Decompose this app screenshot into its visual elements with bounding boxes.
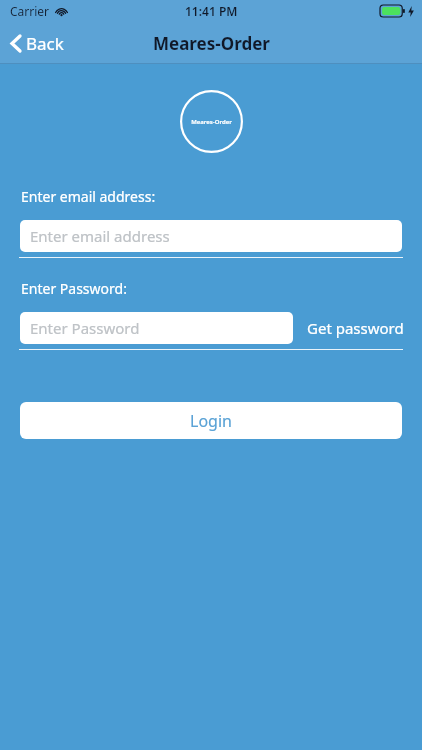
staticText: Login [190, 410, 232, 432]
staticText: Enter Password [30, 318, 140, 338]
staticText: Meares-Order [191, 118, 232, 126]
staticText: Carrier [10, 3, 50, 19]
button[interactable]: Back [0, 28, 76, 59]
button[interactable]: Get password [293, 312, 412, 344]
button[interactable]: Enter Password [20, 312, 293, 344]
staticText: Enter Password: [21, 279, 127, 298]
staticText: Enter email address: [21, 187, 156, 206]
staticText: Meares-Order [153, 32, 270, 55]
staticText: Get password [307, 318, 404, 338]
button[interactable]: Login [20, 402, 402, 439]
button[interactable]: Enter email address [20, 220, 402, 252]
staticText: Enter email address [30, 226, 170, 246]
staticText: Back [26, 32, 64, 55]
staticText: 11:41 PM [185, 3, 238, 19]
